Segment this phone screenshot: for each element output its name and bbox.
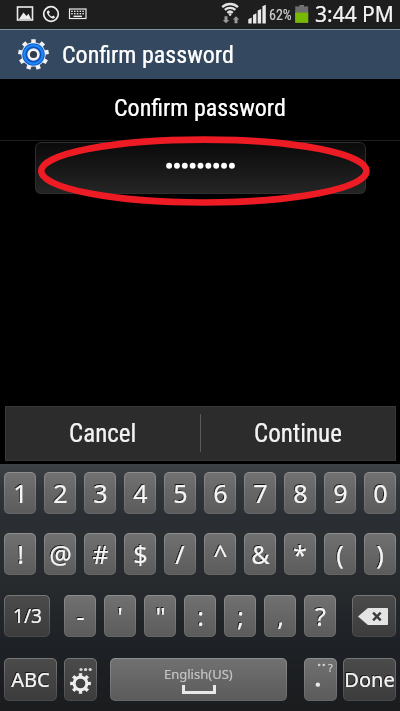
staticText: 0 [372,475,387,509]
staticText: , [276,598,283,632]
button[interactable]: ; [224,595,256,637]
button[interactable]: ^ [204,533,236,575]
staticText: 7 [252,475,267,509]
button[interactable]: : [184,595,216,637]
button[interactable]: Settings [64,658,97,701]
staticText: 3 [93,476,108,510]
staticText: * [292,536,306,570]
button[interactable]: , [264,595,296,637]
staticText: 4 [132,475,147,509]
button[interactable]: @ [44,533,76,575]
staticText: & [251,537,270,571]
staticText: - [76,599,85,633]
button[interactable] [35,142,366,194]
staticText: Continue [254,419,342,448]
staticText: Done [344,666,395,693]
staticText: ! [17,537,24,571]
staticText: 7 [253,476,268,510]
staticText: ? [328,660,333,675]
button[interactable]: Space [110,658,287,701]
staticText: / [175,537,185,571]
button[interactable]: $ [124,533,156,575]
staticText: , [277,599,284,633]
button[interactable]: - [64,595,96,637]
staticText: Confirm password [62,41,234,69]
staticText: ! [16,536,23,570]
button[interactable]: 4 [124,472,156,514]
staticText: $ [132,536,147,570]
staticText: 1 [12,475,27,509]
staticText: Cancel [69,419,137,448]
staticText: : [196,598,203,632]
button[interactable]: ( [324,533,356,575]
staticText: / [174,536,184,570]
button[interactable]: ) [364,533,396,575]
staticText: ( [336,537,344,571]
staticText: ' [116,598,122,632]
button[interactable]: 2 [44,472,76,514]
staticText: English(US) [164,665,233,683]
staticText: 1/3 [13,603,42,629]
staticText: 3 [92,475,107,509]
button[interactable]: " [144,595,176,637]
staticText: ; [236,598,243,632]
staticText: ' [117,599,123,633]
staticText: - [75,598,84,632]
staticText: ) [376,537,384,571]
staticText: ABC [10,665,49,692]
staticText: ^ [212,536,227,570]
staticText: & [250,536,269,570]
staticText: 62% [269,7,292,23]
staticText: 0 [373,476,388,510]
staticText: ( [335,536,343,570]
staticText: : [197,599,204,633]
staticText: 1 [13,476,28,510]
button[interactable]: ? [304,595,336,637]
staticText: ? [315,599,326,633]
staticText: ; [237,599,244,633]
button[interactable]: 3 [84,472,116,514]
staticText: # [91,536,108,570]
staticText: 8 [293,476,308,510]
button[interactable]: Period and symbols [304,658,337,701]
staticText: @ [48,536,71,570]
button[interactable]: Continue [200,406,396,461]
button[interactable]: 7 [244,472,276,514]
staticText: 5 [173,476,188,510]
staticText: 1/3 [12,602,41,628]
staticText: ABC [11,666,50,693]
button[interactable]: # [84,533,116,575]
button[interactable]: 1/3 [4,595,50,637]
button[interactable]: ! [4,533,36,575]
button[interactable]: & [244,533,276,575]
button[interactable]: Settings [18,39,49,70]
staticText: 6 [212,475,227,509]
button[interactable]: Backspace [352,595,396,637]
staticText: ? [314,598,325,632]
staticText: ) [375,536,383,570]
staticText: 3:44 PM [315,0,394,29]
button[interactable]: Done [343,658,396,701]
button[interactable]: 5 [164,472,196,514]
button[interactable]: / [164,533,196,575]
staticText: 2 [52,475,67,509]
staticText: 4 [133,476,148,510]
button[interactable]: ' [104,595,136,637]
button[interactable]: 1 [4,472,36,514]
staticText: # [92,537,109,571]
button[interactable]: ABC [4,658,57,701]
button[interactable]: Cancel [5,406,200,461]
staticText: * [293,537,307,571]
button[interactable]: 6 [204,472,236,514]
button[interactable]: 0 [364,472,396,514]
staticText: " [155,599,166,633]
staticText: 2 [53,476,68,510]
staticText: " [154,598,165,632]
staticText: @ [49,537,72,571]
button[interactable]: * [284,533,316,575]
staticText: 9 [332,475,347,509]
staticText: 9 [333,476,348,510]
button[interactable]: 8 [284,472,316,514]
staticText: $ [133,537,148,571]
button[interactable]: 9 [324,472,356,514]
